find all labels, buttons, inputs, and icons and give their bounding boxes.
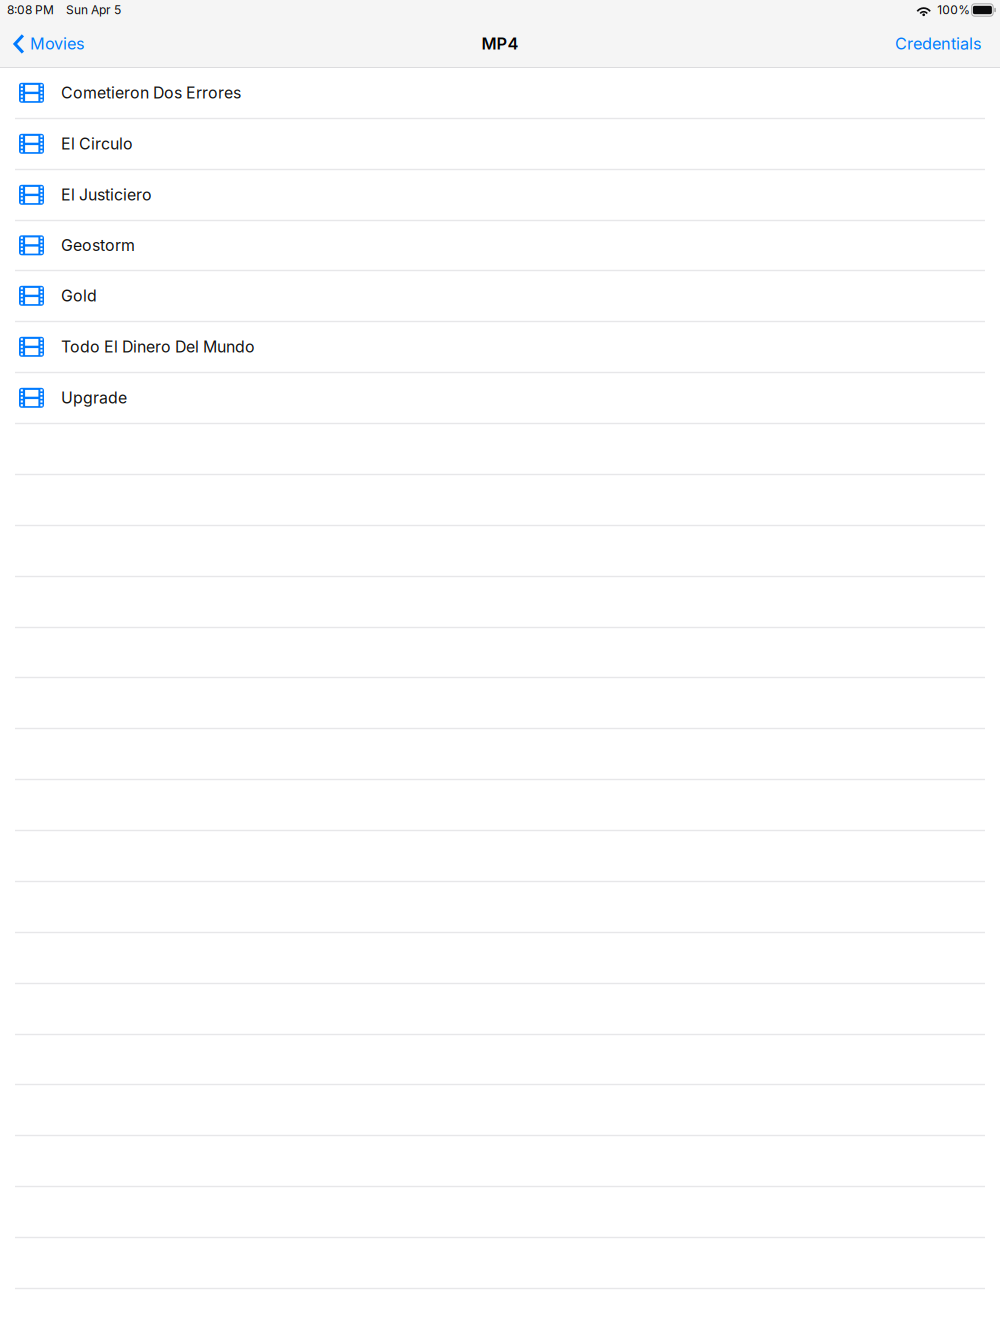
button[interactable]: Upgrade — [0, 373, 1000, 424]
staticText: Geostorm — [61, 236, 135, 255]
button[interactable]: Cometieron Dos Errores — [0, 68, 1000, 119]
staticText: MP4 — [481, 34, 518, 53]
button[interactable]: El Justiciero — [0, 170, 1000, 221]
staticText: Sun Apr 5 — [66, 3, 121, 17]
staticText: 100% — [937, 3, 970, 17]
button[interactable]: Credentials — [875, 20, 1000, 67]
staticText: Upgrade — [61, 388, 127, 407]
staticText: Cometieron Dos Errores — [61, 83, 241, 102]
button[interactable]: Todo El Dinero Del Mundo — [0, 322, 1000, 373]
staticText: 8:08 PM — [7, 3, 54, 17]
button[interactable]: Movies — [0, 20, 93, 67]
button[interactable]: Gold — [0, 271, 1000, 322]
staticText: Movies — [30, 34, 85, 53]
staticText: Todo El Dinero Del Mundo — [61, 337, 255, 356]
staticText: Gold — [61, 286, 97, 305]
button[interactable]: Geostorm — [0, 221, 1000, 271]
staticText: El Circulo — [61, 134, 133, 153]
button[interactable]: El Circulo — [0, 119, 1000, 170]
staticText: Credentials — [895, 34, 982, 53]
staticText: El Justiciero — [61, 185, 152, 204]
